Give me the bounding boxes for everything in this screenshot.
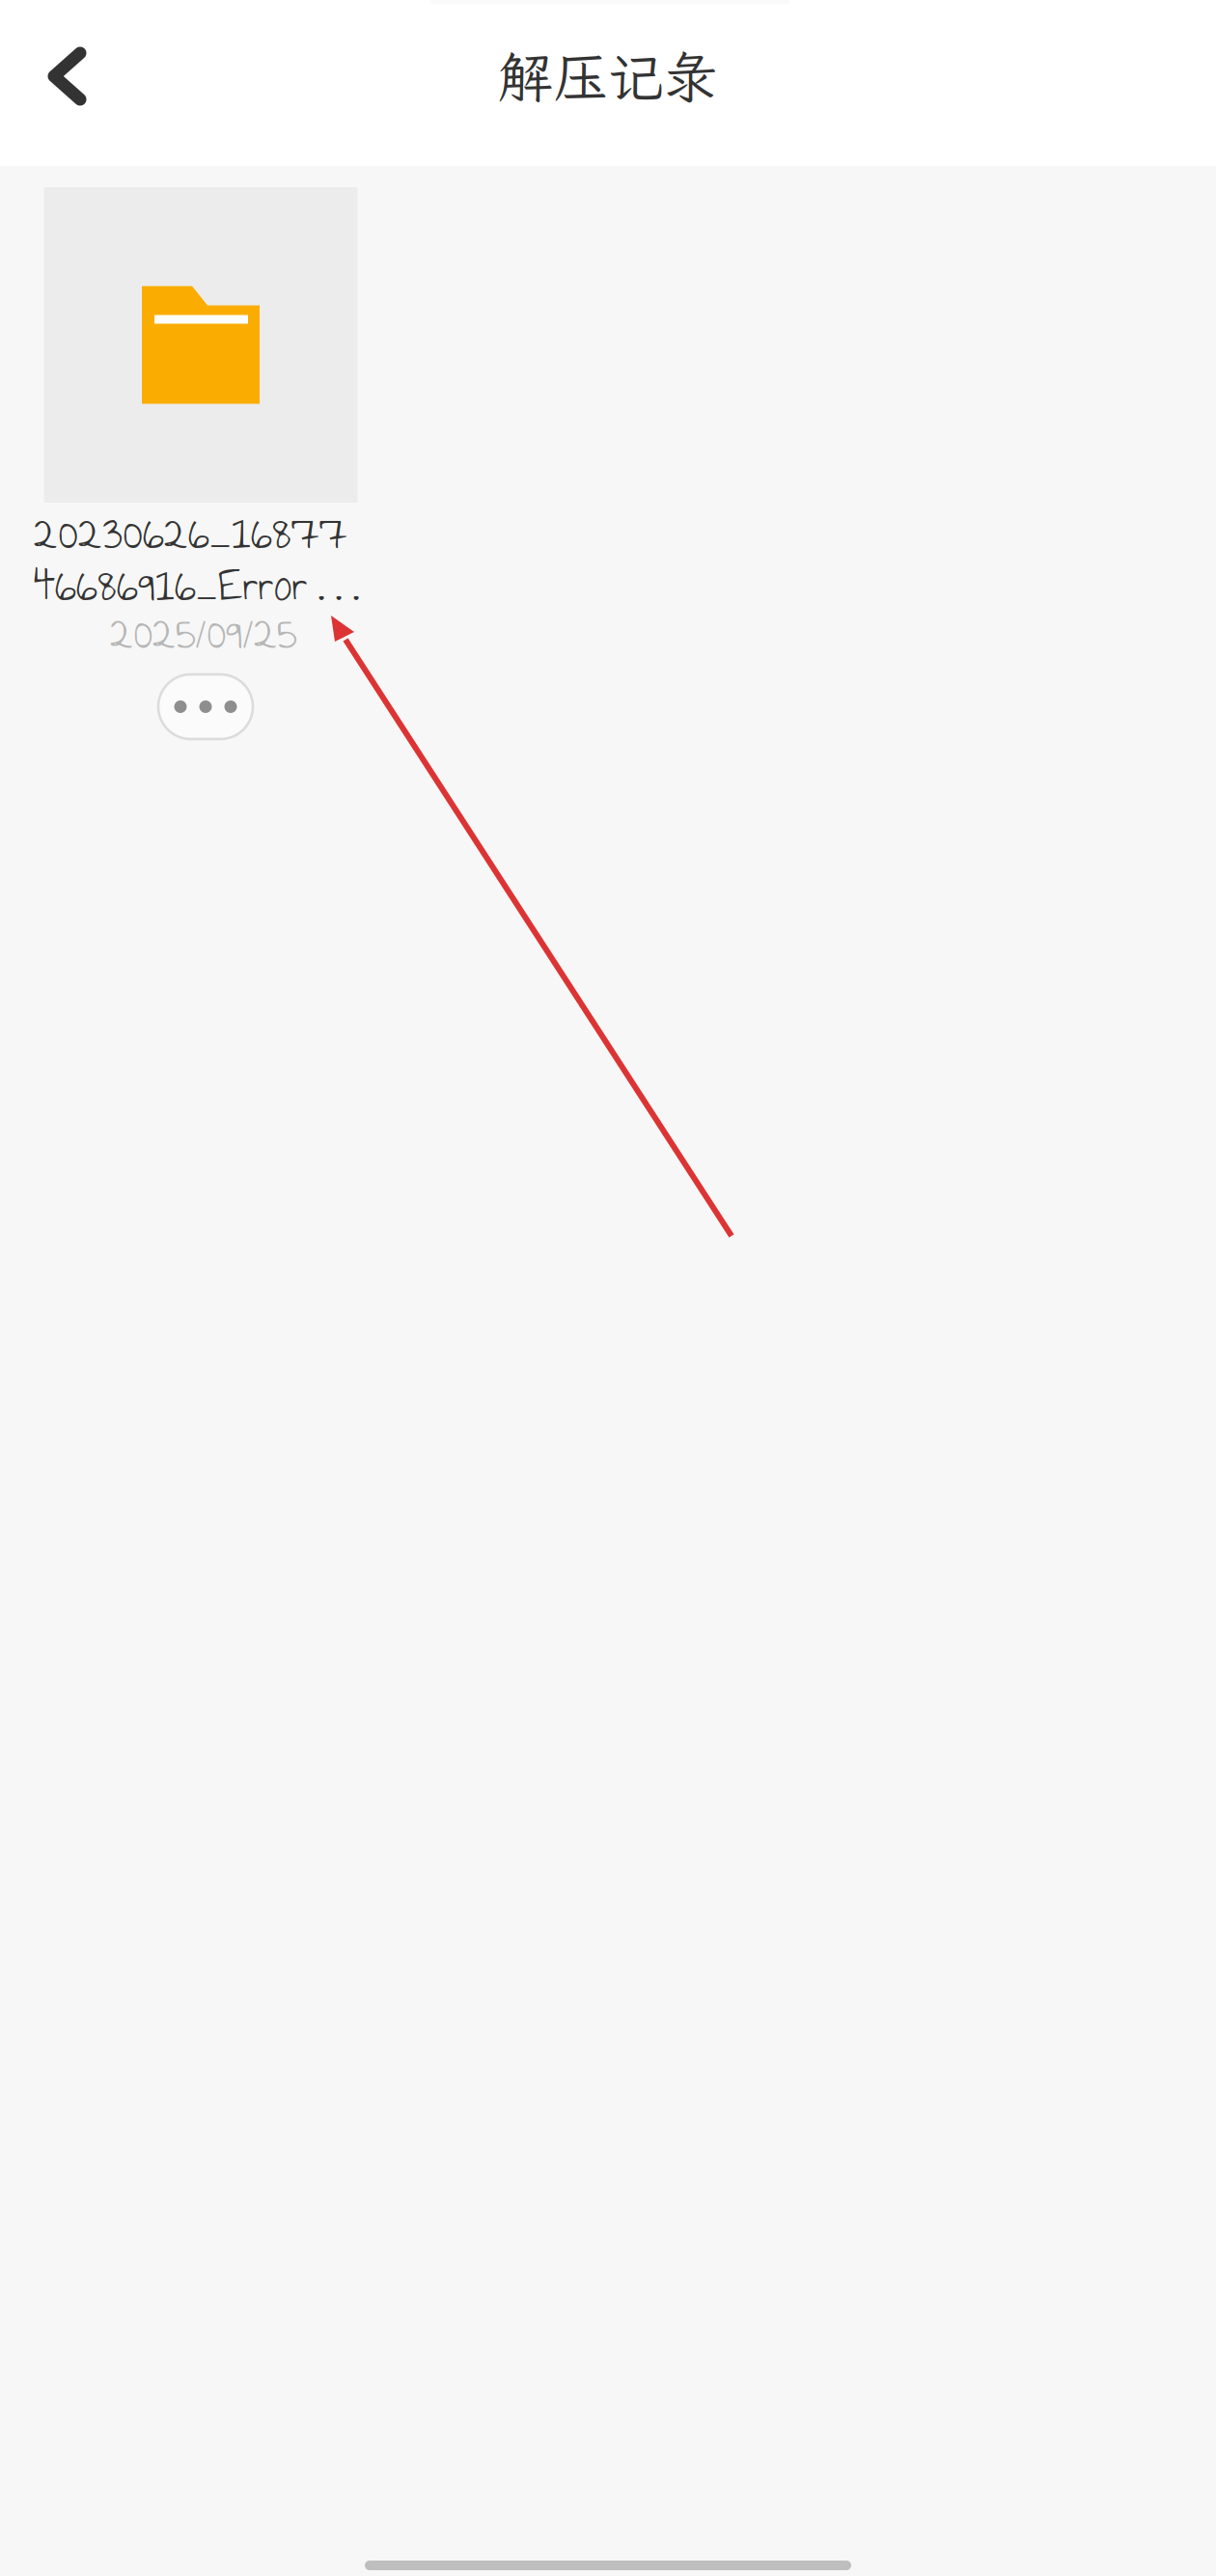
staticText: 46686916_Error . . . — [34, 549, 360, 621]
button[interactable]: 20230626_16877 — [34, 187, 373, 739]
staticText: 解压记录 — [498, 40, 718, 113]
staticText: 2025/09/25 — [110, 598, 297, 668]
button[interactable]: Back — [0, 0, 133, 153]
button[interactable]: More options — [158, 674, 253, 739]
staticText: 20230626_16877 — [34, 497, 347, 568]
